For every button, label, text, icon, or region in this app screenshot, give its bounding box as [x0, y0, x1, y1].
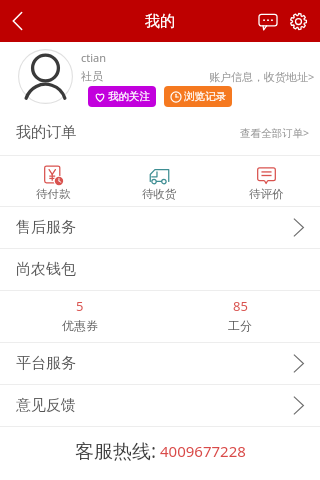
- staticText: 客服热线:: [75, 438, 157, 464]
- staticText: 5: [76, 297, 84, 315]
- staticText: 待评价: [249, 187, 284, 201]
- button[interactable]: 85: [160, 291, 320, 333]
- staticText: ctian: [81, 50, 107, 65]
- staticText: 尚农钱包: [16, 260, 76, 279]
- button[interactable]: Messages: [253, 0, 283, 42]
- button[interactable]: 浏览记录: [164, 86, 232, 107]
- button[interactable]: 意见反馈: [0, 385, 320, 426]
- button[interactable]: 平台服务: [0, 343, 320, 384]
- staticText: 工分: [228, 318, 252, 333]
- staticText: 待收货: [142, 187, 177, 201]
- staticText: 浏览记录: [184, 90, 226, 103]
- staticText: 我的关注: [108, 90, 150, 103]
- button[interactable]: 客服热线:: [75, 438, 246, 464]
- staticText: 待付款: [36, 187, 71, 201]
- button[interactable]: Settings: [283, 0, 313, 42]
- button[interactable]: 5: [0, 291, 160, 333]
- staticText: 我的订单: [16, 123, 76, 142]
- staticText: 平台服务: [16, 354, 76, 373]
- button[interactable]: Back: [0, 0, 34, 42]
- staticText: 优惠券: [62, 318, 98, 333]
- button[interactable]: 尚农钱包: [0, 249, 320, 290]
- staticText: 我的: [145, 12, 175, 31]
- staticText: 售后服务: [16, 218, 76, 237]
- button[interactable]: 售后服务: [0, 207, 320, 248]
- staticText: 社员: [81, 69, 103, 83]
- button[interactable]: 账户信息，收货地址>: [209, 69, 315, 84]
- button[interactable]: 待付款: [0, 162, 106, 201]
- button[interactable]: 待收货: [106, 162, 213, 201]
- button[interactable]: 查看全部订单>: [240, 126, 310, 140]
- staticText: 85: [233, 297, 248, 315]
- button[interactable]: 待评价: [213, 162, 320, 201]
- button[interactable]: 我的关注: [88, 86, 156, 107]
- staticText: 4009677228: [160, 441, 246, 461]
- staticText: 意见反馈: [16, 396, 76, 415]
